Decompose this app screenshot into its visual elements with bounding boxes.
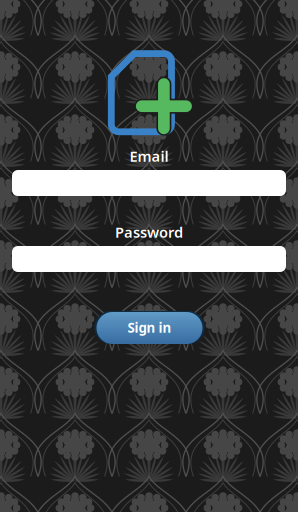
staticText: Password <box>115 222 183 242</box>
staticText: Sign in <box>127 319 171 336</box>
staticText: Email <box>129 146 168 166</box>
button[interactable]: Sign in <box>94 311 204 344</box>
